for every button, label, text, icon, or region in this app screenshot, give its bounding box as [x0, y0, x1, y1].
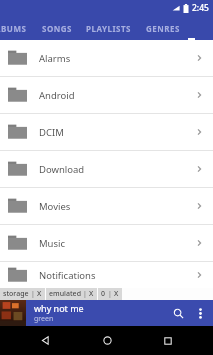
other: Open folder [193, 52, 205, 64]
button[interactable]: GENRES [138, 16, 188, 40]
staticText: PLAYLISTS [86, 23, 132, 34]
button[interactable]: DCIM [0, 114, 213, 150]
other: Open folder [193, 269, 205, 281]
staticText: X [114, 289, 119, 299]
staticText: Download [39, 163, 193, 176]
staticText: Android [39, 89, 193, 102]
button[interactable]: More options [190, 303, 210, 323]
button[interactable]: storage [0, 288, 45, 300]
button[interactable]: Recent apps [151, 326, 185, 355]
button[interactable]: Home [90, 326, 124, 355]
button[interactable]: emulated [46, 288, 97, 300]
staticText: X [37, 289, 42, 299]
staticText: GENRES [146, 23, 180, 34]
button[interactable]: 0 [98, 288, 122, 300]
button[interactable]: FILES [188, 16, 195, 40]
staticText: | [83, 289, 87, 299]
staticText: green [34, 314, 54, 324]
button[interactable]: Notifications [0, 262, 213, 288]
staticText: emulated [49, 289, 81, 299]
staticText: ALBUMS [0, 23, 27, 34]
other: Open folder [193, 126, 205, 138]
staticText: 0 [101, 289, 106, 299]
button[interactable]: Movies [0, 188, 213, 224]
button[interactable]: ALBUMS [0, 16, 34, 40]
other: Open folder [193, 89, 205, 101]
staticText: | [108, 289, 112, 299]
staticText: SONGS [42, 23, 72, 34]
staticText: X [89, 289, 94, 299]
button[interactable]: Album art [0, 300, 213, 326]
other: Open folder [193, 200, 205, 212]
staticText: Notifications [39, 269, 193, 282]
button[interactable]: Album art [0, 300, 26, 326]
other: Open folder [193, 237, 205, 249]
staticText: | [31, 289, 35, 299]
button[interactable]: PLAYLISTS [80, 16, 138, 40]
staticText: why not me [34, 302, 84, 314]
button[interactable]: SONGS [34, 16, 80, 40]
staticText: storage [3, 289, 29, 299]
button[interactable]: Search [166, 301, 190, 325]
button[interactable]: Back [28, 326, 62, 355]
staticText: Music [39, 237, 193, 250]
staticText: DCIM [39, 126, 193, 139]
button[interactable]: Download [0, 151, 213, 187]
staticText: Alarms [39, 52, 193, 65]
button[interactable]: Music [0, 225, 213, 261]
other: Open folder [193, 163, 205, 175]
button[interactable]: Alarms [0, 40, 213, 76]
staticText: 2:45 [192, 2, 209, 14]
staticText: Movies [39, 200, 193, 213]
button[interactable]: Android [0, 77, 213, 113]
